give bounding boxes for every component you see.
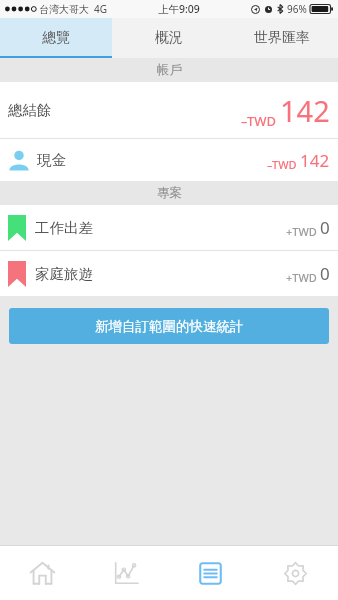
staticText: 新增自訂範圍的快速統計 [95,318,244,335]
staticText: +TWD [286,224,317,239]
staticText: 0 [320,216,330,239]
staticText: 台湾大哥大 [39,3,89,16]
staticText: 總結餘 [8,101,52,119]
button[interactable]: 總覽 [0,18,112,58]
button[interactable]: Settings [253,546,338,600]
staticText: –TWD [267,157,297,172]
button[interactable]: 概況 [112,18,225,58]
button[interactable]: 家庭旅遊 [0,251,338,296]
staticText: 世界匯率 [254,29,310,47]
staticText: 96% [287,2,307,16]
staticText: 4G [94,2,107,16]
button[interactable]: 世界匯率 [225,18,338,58]
staticText: 專案 [157,185,182,201]
staticText: 家庭旅遊 [35,265,93,283]
staticText: 帳戶 [157,62,182,78]
button[interactable]: 現金 [0,139,338,181]
staticText: 142 [300,149,330,172]
staticText: +TWD [286,270,317,285]
staticText: 142 [280,91,330,130]
staticText: 0 [320,262,330,285]
staticText: 上午9:09 [158,2,200,16]
staticText: 概況 [155,29,183,47]
button[interactable]: List [168,546,253,600]
button[interactable]: 總結餘 [0,82,338,138]
staticText: –TWD [241,112,277,130]
button[interactable]: Home [0,546,84,600]
staticText: 工作出差 [35,219,93,237]
staticText: 總覽 [42,29,70,47]
button[interactable]: Charts [84,546,168,600]
button[interactable]: 新增自訂範圍的快速統計 [9,308,329,344]
staticText: 現金 [37,151,66,169]
button[interactable]: 工作出差 [0,205,338,250]
